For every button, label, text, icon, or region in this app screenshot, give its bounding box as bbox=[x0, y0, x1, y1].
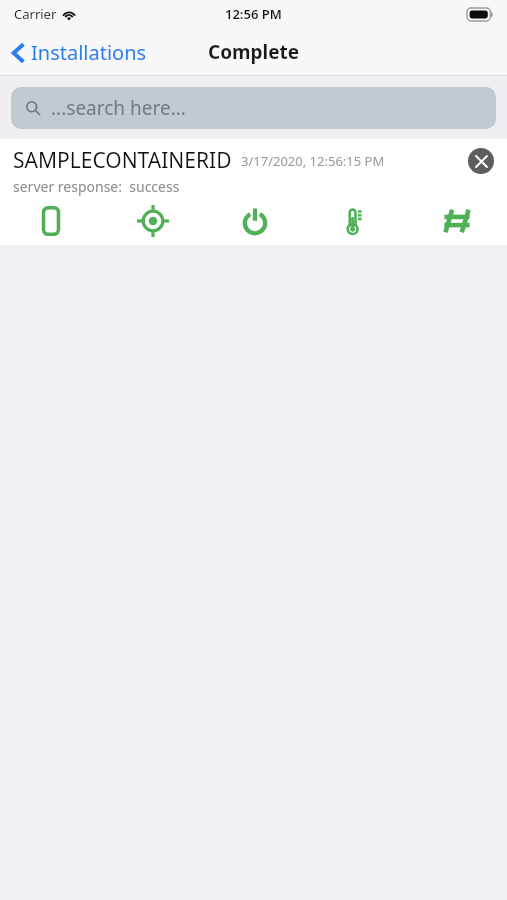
button[interactable]: Installations bbox=[0, 33, 157, 72]
button[interactable]: Counter bbox=[406, 200, 507, 242]
button[interactable]: ...search here... bbox=[11, 87, 496, 129]
staticText: Carrier bbox=[14, 5, 57, 23]
button[interactable]: SAMPLECONTAINERID bbox=[0, 139, 507, 245]
button[interactable]: Power bbox=[204, 200, 305, 242]
staticText: SAMPLECONTAINERID bbox=[13, 146, 232, 175]
button[interactable]: Device bbox=[0, 200, 102, 242]
button[interactable]: Location bbox=[102, 200, 204, 242]
staticText: Installations bbox=[31, 39, 147, 66]
staticText: 3/17/2020, 12:56:15 PM bbox=[241, 152, 385, 170]
staticText: ...search here... bbox=[51, 95, 186, 121]
button[interactable]: Remove installation bbox=[468, 148, 494, 174]
staticText: server response: success bbox=[13, 177, 180, 196]
staticText: Complete bbox=[208, 39, 300, 65]
button[interactable]: Temperature bbox=[305, 200, 406, 242]
staticText: 12:56 PM bbox=[225, 5, 282, 23]
